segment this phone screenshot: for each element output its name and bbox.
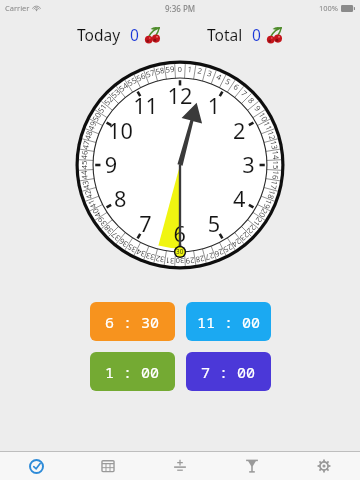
button[interactable]: Calendar <box>72 452 144 480</box>
staticText: 6 : 30 <box>105 312 160 332</box>
staticText: 100% <box>319 3 339 13</box>
staticText: 1 : 00 <box>105 362 160 382</box>
staticText: 7 : 00 <box>201 362 256 382</box>
button[interactable]: Clock face <box>74 59 286 271</box>
staticText: Carrier <box>5 3 30 13</box>
staticText: Total <box>207 24 243 45</box>
staticText: 11 : 00 <box>197 312 261 332</box>
button[interactable]: Today <box>77 24 161 45</box>
button[interactable]: Adjust <box>144 452 216 480</box>
staticText: Today <box>77 24 121 45</box>
button[interactable]: 1 : 00 <box>90 352 175 391</box>
button[interactable]: Timer <box>0 452 72 480</box>
staticText: 0 <box>252 24 261 45</box>
button[interactable]: 6 : 30 <box>90 302 175 341</box>
staticText: 9:36 PM <box>165 3 196 14</box>
button[interactable]: 11 : 00 <box>186 302 271 341</box>
button[interactable]: Awards <box>216 452 288 480</box>
button[interactable]: Settings <box>288 452 360 480</box>
button[interactable]: Total <box>207 24 283 45</box>
button[interactable]: 7 : 00 <box>186 352 271 391</box>
staticText: 0 <box>130 24 139 45</box>
